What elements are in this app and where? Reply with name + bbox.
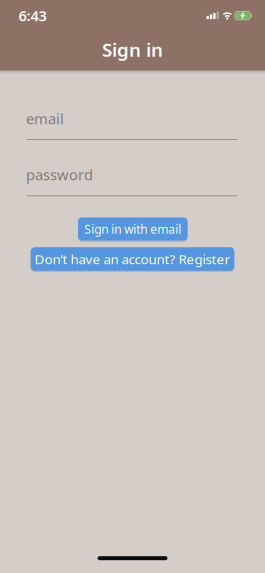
- button[interactable]: Sign in with email: [78, 217, 188, 241]
- staticText: Don’t have an account? Register: [34, 250, 230, 268]
- staticText: password: [26, 165, 93, 184]
- button[interactable]: Don’t have an account? Register: [31, 247, 234, 271]
- textField[interactable]: [26, 172, 237, 192]
- staticText: [26, 116, 30, 135]
- staticText: Sign in with email: [84, 221, 181, 237]
- staticText: 6:43: [18, 6, 46, 25]
- staticText: Sign in: [102, 37, 163, 62]
- staticText: [26, 172, 30, 192]
- staticText: email: [26, 109, 64, 128]
- textField[interactable]: [26, 116, 237, 135]
